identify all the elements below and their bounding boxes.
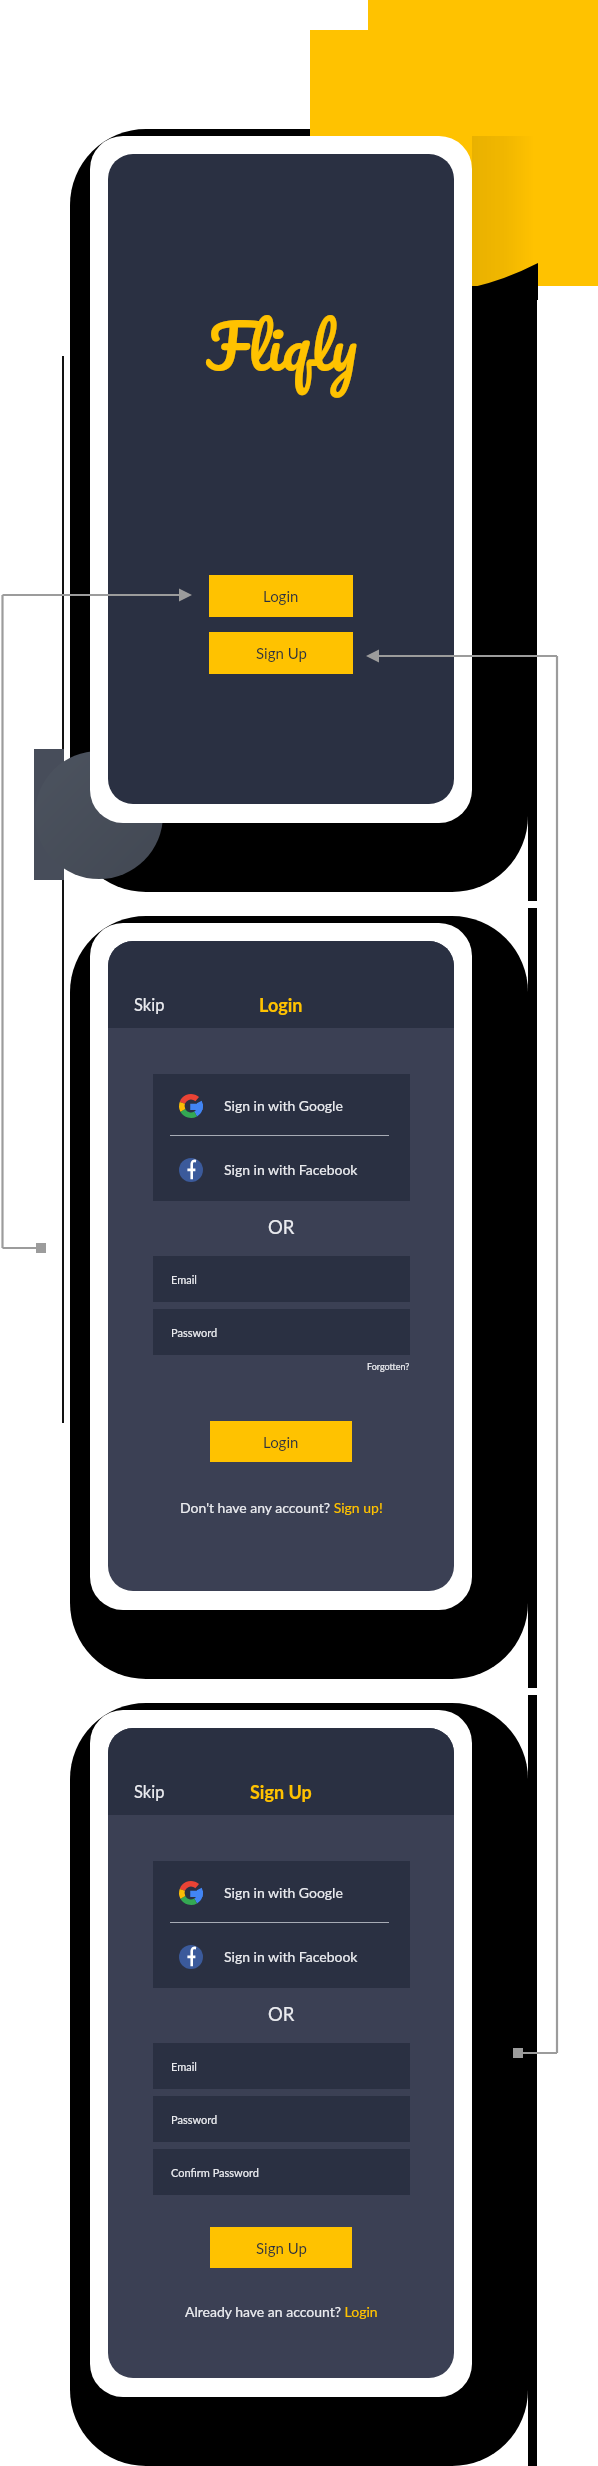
staticText: Password [171,2113,218,2126]
button[interactable]: Don't have any account? Sign up! [180,1499,383,1516]
staticText: Skip [134,1782,165,1802]
staticText: Login [259,994,303,1016]
button[interactable]: Email [153,2043,410,2089]
staticText: Email [171,1273,197,1286]
button[interactable]: Skip [122,991,177,1019]
other: Flow connectors [0,0,598,2466]
button[interactable]: Sign in with Facebook [153,1925,410,1988]
staticText: Password [171,1326,218,1339]
button[interactable]: Sign in with Google [153,1861,410,1924]
button[interactable]: Login [210,1421,352,1462]
button[interactable]: Skip [122,1778,177,1806]
button[interactable]: Email [153,1256,410,1302]
staticText: Email [171,2060,197,2073]
button[interactable]: Login [209,575,353,617]
staticText: Sign Up [256,644,307,662]
staticText: OR [268,2003,295,2025]
button[interactable]: Forgotten? [367,1361,410,1372]
staticText: Sign Up [250,1781,312,1803]
button[interactable]: Confirm Password [153,2149,410,2195]
staticText: Sign in with Google [224,1884,343,1901]
button[interactable]: Sign in with Facebook [153,1138,410,1201]
staticText: Fliqly [206,294,357,398]
staticText: Login [263,587,299,605]
button[interactable]: Already have an account? Login [185,2303,378,2320]
staticText: Sign in with Google [224,1097,343,1114]
staticText: Sign Up [256,2239,307,2257]
button[interactable]: Sign in with Google [153,1074,410,1137]
staticText: Confirm Password [171,2166,259,2179]
button[interactable]: Sign Up [209,632,353,674]
staticText: Skip [134,995,165,1015]
button[interactable]: Password [153,1309,410,1355]
staticText: Sign in with Facebook [224,1161,358,1178]
staticText: Login [263,1433,299,1451]
staticText: OR [268,1216,295,1238]
button[interactable]: Password [153,2096,410,2142]
staticText: Sign in with Facebook [224,1948,358,1965]
button[interactable]: Sign Up [210,2227,352,2268]
